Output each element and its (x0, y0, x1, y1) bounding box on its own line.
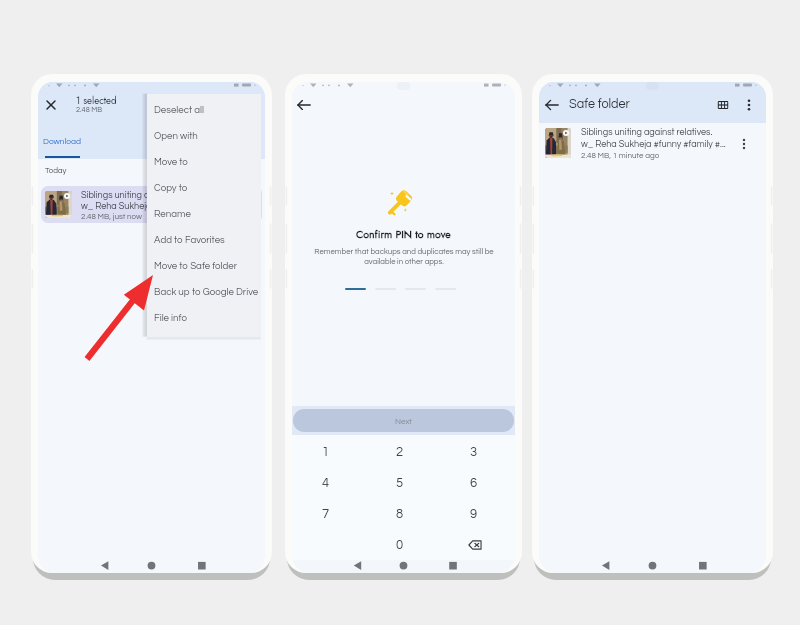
staticText: 9 (470, 507, 478, 520)
staticText: Back up to Google Drive (154, 287, 259, 297)
staticText: 3 (470, 445, 478, 458)
button[interactable]: Download (41, 137, 83, 158)
button[interactable]: Backspace (437, 529, 511, 560)
button[interactable] (539, 123, 766, 560)
button[interactable]: 0 (363, 529, 437, 560)
button[interactable]: More options (735, 135, 753, 153)
button[interactable]: Close (40, 94, 62, 116)
staticText: 0 (396, 538, 404, 551)
staticText: 2.48 MB, just now (81, 212, 142, 220)
staticText: 2.48 MB (76, 106, 103, 114)
staticText: Add to Favorites (154, 235, 225, 245)
staticText: Copy to (154, 183, 188, 193)
button[interactable]: Back (294, 95, 314, 115)
staticText: Siblings uniting against relatives. (81, 191, 213, 200)
staticText: Safe folder (569, 98, 630, 111)
staticText: 1 selected (76, 94, 117, 106)
button[interactable]: Next (293, 409, 514, 432)
staticText: Move to Safe folder (154, 261, 238, 271)
staticText: Move to (154, 157, 188, 167)
button[interactable]: Move to (147, 149, 261, 175)
staticText: Siblings uniting against relatives. (581, 128, 713, 137)
button[interactable]: 4 (292, 467, 363, 498)
staticText: Open with (154, 131, 198, 141)
button[interactable]: 9 (437, 498, 511, 529)
staticText: 2 (396, 445, 404, 458)
button[interactable]: File info (147, 305, 261, 331)
staticText: Rename (154, 209, 191, 219)
button[interactable]: Back (542, 95, 562, 115)
button[interactable]: Copy to (147, 175, 261, 201)
staticText: 5 (396, 476, 404, 489)
staticText: Confirm PIN to move (356, 227, 451, 242)
button[interactable]: 7 (292, 498, 363, 529)
button[interactable]: Open with (147, 123, 261, 149)
button[interactable]: Add to Favorites (147, 227, 261, 253)
staticText: Remember that backups and duplicates may… (314, 248, 494, 265)
staticText: Download (43, 137, 81, 146)
staticText: 8 (396, 507, 404, 520)
button[interactable]: More options (739, 95, 759, 115)
button[interactable]: 8 (363, 498, 437, 529)
button[interactable]: 5 (363, 467, 437, 498)
staticText: Deselect all (154, 105, 204, 115)
button[interactable]: 6 (437, 467, 511, 498)
other: Backspace (466, 537, 482, 553)
button[interactable]: Grid view (713, 95, 733, 115)
staticText: 1 (322, 445, 330, 458)
staticText: 4 (322, 476, 330, 489)
button[interactable]: Siblings uniting against relatives. (41, 186, 262, 223)
button[interactable]: Rename (147, 201, 261, 227)
button[interactable]: 2 (363, 435, 437, 467)
staticText: w_ Reha Sukheja #funny #family #... (581, 140, 726, 149)
staticText: Today (45, 167, 67, 175)
button[interactable]: 1 (292, 435, 363, 467)
staticText: File info (154, 313, 187, 323)
button[interactable]: Back up to Google Drive (147, 279, 261, 305)
button[interactable]: Deselect all (147, 97, 261, 123)
staticText: 7 (322, 507, 330, 520)
staticText: w_ Reha Sukheja #funny #family #... (81, 202, 226, 211)
button[interactable]: Move to Safe folder (147, 253, 261, 279)
button[interactable]: 3 (437, 435, 511, 467)
staticText: 6 (470, 476, 478, 489)
staticText: 2.48 MB, 1 minute ago (581, 151, 660, 159)
staticText: Next (395, 417, 413, 425)
